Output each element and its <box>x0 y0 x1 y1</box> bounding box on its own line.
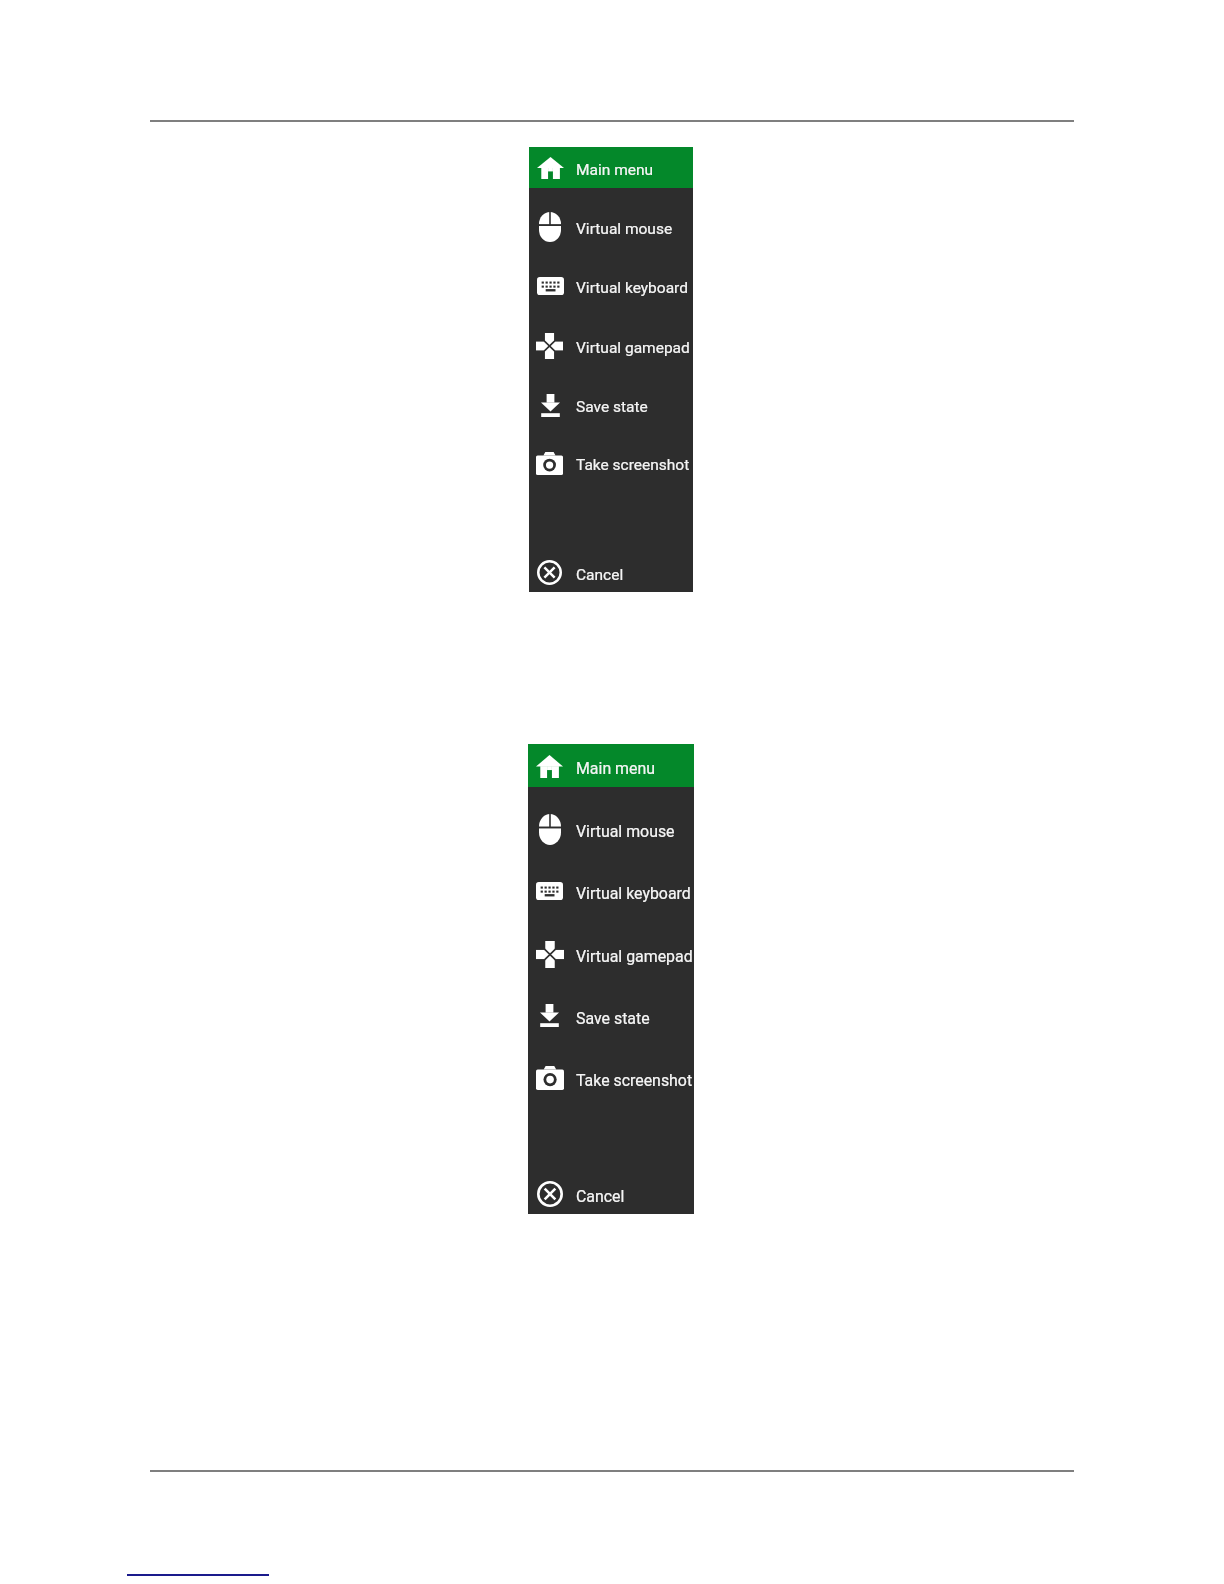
staticText: Virtual keyboard <box>576 279 688 297</box>
button[interactable]: Save state <box>528 988 694 1044</box>
staticText: Virtual gamepad <box>576 947 693 966</box>
button[interactable]: Cancel <box>528 1166 694 1214</box>
staticText: Cancel <box>576 566 624 584</box>
button[interactable]: Virtual mouse <box>528 801 694 857</box>
staticText: Take screenshot <box>576 456 690 474</box>
button[interactable]: Virtual gamepad <box>529 318 693 374</box>
staticText: Virtual mouse <box>576 822 675 841</box>
button[interactable]: Cancel <box>529 545 693 592</box>
staticText: Save state <box>576 398 648 416</box>
button[interactable]: Main menu <box>528 745 694 788</box>
staticText: Virtual mouse <box>576 220 673 238</box>
staticText: Take screenshot <box>576 1071 693 1090</box>
staticText: Main menu <box>576 759 655 778</box>
staticText: Virtual keyboard <box>576 884 691 903</box>
button[interactable]: Take screenshot <box>528 1050 694 1106</box>
staticText: Save state <box>576 1009 650 1028</box>
button[interactable]: Take screenshot <box>529 435 693 491</box>
button[interactable]: Virtual keyboard <box>529 258 693 314</box>
button[interactable]: Virtual mouse <box>529 199 693 255</box>
staticText: Cancel <box>576 1187 625 1206</box>
staticText: Main menu <box>576 161 654 179</box>
staticText: Virtual gamepad <box>576 339 690 357</box>
button[interactable]: Main menu <box>529 147 693 188</box>
button[interactable]: Save state <box>529 377 693 433</box>
button[interactable]: Virtual gamepad <box>528 926 694 982</box>
button[interactable]: Virtual keyboard <box>528 863 694 919</box>
